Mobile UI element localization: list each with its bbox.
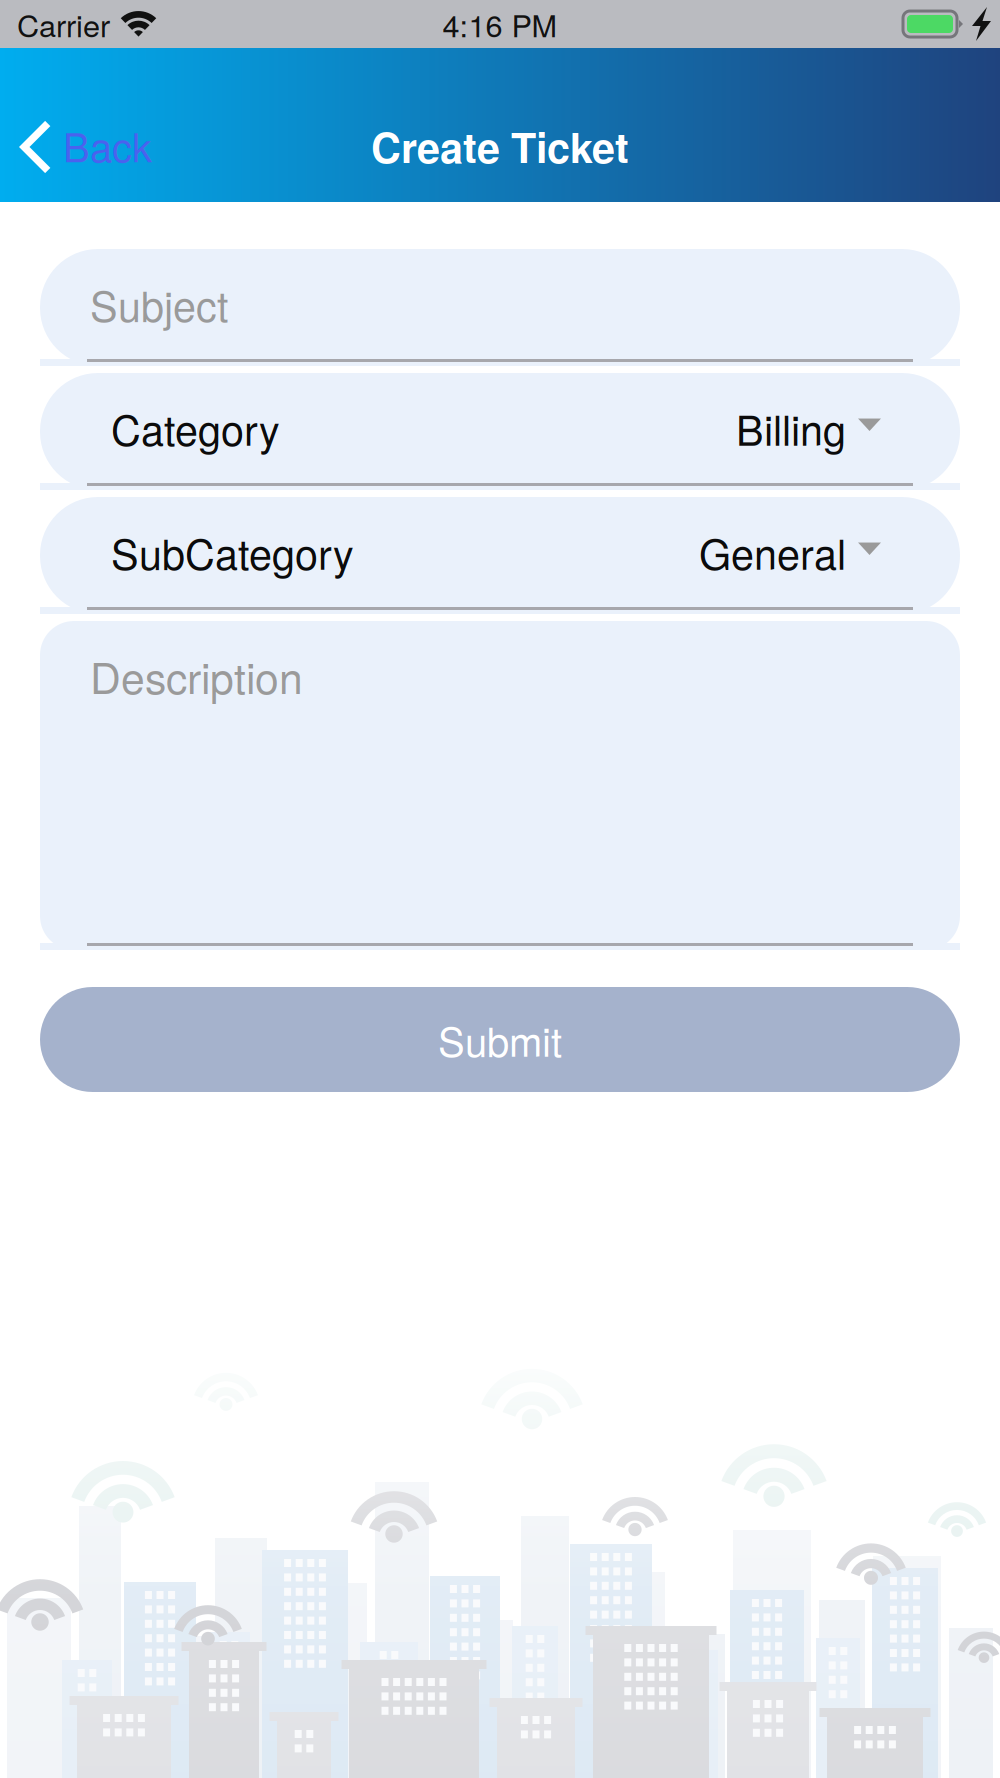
staticText: SubCategory xyxy=(111,522,354,582)
staticText: Subject xyxy=(90,274,228,334)
staticText: Back xyxy=(63,116,152,174)
button[interactable]: Description xyxy=(40,621,960,950)
button[interactable]: Submit xyxy=(40,987,960,1092)
staticText: General xyxy=(699,522,846,582)
staticText: Description xyxy=(90,645,303,706)
button[interactable]: SubCategory xyxy=(40,497,960,614)
staticText: Category xyxy=(111,398,280,458)
staticText: Carrier xyxy=(17,2,110,46)
staticText: Submit xyxy=(438,1011,562,1068)
button[interactable]: Subject xyxy=(40,249,960,366)
button[interactable]: Category xyxy=(40,373,960,490)
button[interactable]: Back xyxy=(0,48,230,202)
staticText: 4:16 PM xyxy=(442,2,557,46)
staticText: Billing xyxy=(736,398,846,458)
staticText: Create Ticket xyxy=(371,116,629,176)
